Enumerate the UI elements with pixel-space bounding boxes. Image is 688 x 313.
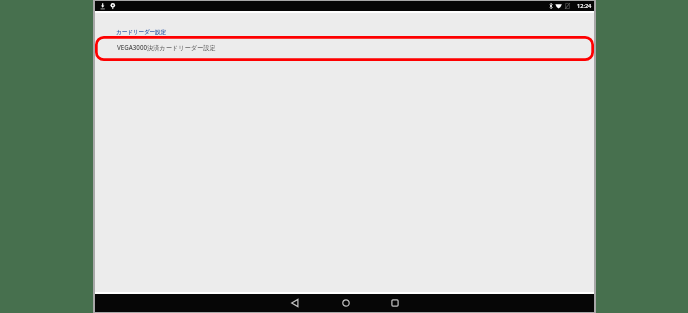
staticText: カードリーダー設定 [116,29,167,36]
staticText: 12:24 [577,2,592,10]
button[interactable]: VEGA3000決済カードリーダー設定 [95,35,594,59]
button[interactable]: Back [283,294,307,312]
staticText: VEGA3000決済カードリーダー設定 [117,43,216,51]
button[interactable]: Recent apps [383,294,407,312]
button[interactable]: Home [334,294,358,312]
